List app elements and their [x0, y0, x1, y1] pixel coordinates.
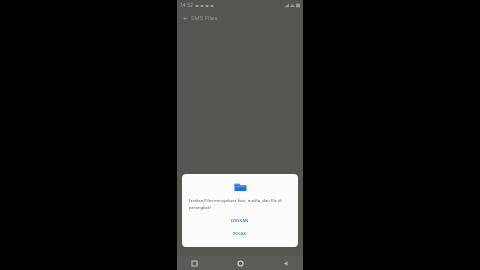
staticText: Izinkan Files mengakses foto, media, dan…: [189, 198, 291, 210]
staticText: SMS Files: [191, 14, 218, 22]
button[interactable]: Home: [235, 258, 246, 269]
staticText: 14:32: [180, 2, 193, 9]
staticText: TOLAK: [233, 231, 247, 237]
button[interactable]: IZINKAN: [189, 217, 291, 225]
button[interactable]: Recents: [189, 258, 200, 269]
button[interactable]: Back: [280, 258, 291, 269]
button[interactable]: TOLAK: [189, 230, 291, 238]
staticText: IZINKAN: [231, 218, 249, 224]
button[interactable]: Back: [180, 13, 190, 23]
